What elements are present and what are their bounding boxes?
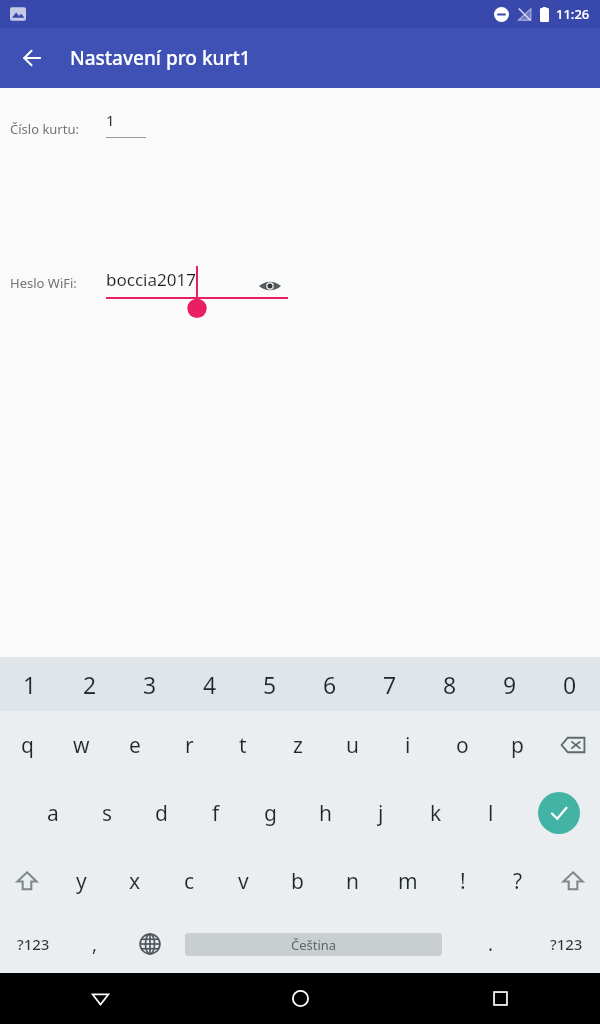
staticText: , bbox=[92, 931, 98, 957]
button[interactable]: Back bbox=[8, 34, 56, 82]
staticText: l bbox=[488, 799, 494, 828]
button[interactable]: s bbox=[80, 779, 134, 847]
button[interactable]: c bbox=[162, 847, 216, 915]
staticText: 0 bbox=[563, 669, 577, 700]
button[interactable]: t bbox=[216, 711, 270, 779]
button[interactable]: ?123 bbox=[532, 915, 600, 973]
staticText: m bbox=[398, 867, 418, 896]
button[interactable]: 3 bbox=[120, 657, 180, 711]
staticText: f bbox=[212, 799, 220, 828]
button[interactable]: Enter bbox=[518, 779, 600, 847]
button[interactable]: g bbox=[243, 779, 298, 847]
button[interactable]: , bbox=[67, 915, 122, 973]
button[interactable]: y bbox=[54, 847, 108, 915]
staticText: j bbox=[378, 799, 384, 828]
staticText: ?123 bbox=[17, 934, 50, 954]
button[interactable]: x bbox=[108, 847, 162, 915]
button[interactable]: z bbox=[270, 711, 325, 779]
button[interactable]: Shift bbox=[0, 847, 54, 915]
staticText: g bbox=[264, 799, 277, 828]
button[interactable]: k bbox=[408, 779, 463, 847]
button[interactable]: Shift bbox=[545, 847, 600, 915]
button[interactable]: Čeština bbox=[177, 915, 450, 973]
staticText: x bbox=[129, 867, 141, 896]
staticText: 2 bbox=[83, 669, 97, 700]
button[interactable]: v bbox=[216, 847, 270, 915]
button[interactable]: f bbox=[188, 779, 243, 847]
staticText: n bbox=[346, 867, 359, 896]
staticText: 1 bbox=[106, 110, 115, 130]
button[interactable]: r bbox=[162, 711, 216, 779]
button[interactable]: ? bbox=[490, 847, 545, 915]
staticText: 7 bbox=[383, 669, 397, 700]
button[interactable]: a bbox=[26, 779, 80, 847]
staticText: 5 bbox=[263, 669, 277, 700]
button[interactable]: q bbox=[0, 711, 54, 779]
button[interactable]: 0 bbox=[540, 657, 600, 711]
staticText: boccia2017 bbox=[106, 268, 196, 291]
staticText: s bbox=[102, 799, 113, 828]
button[interactable]: Home bbox=[200, 973, 400, 1024]
button[interactable]: Change language bbox=[122, 915, 177, 973]
button[interactable]: m bbox=[380, 847, 435, 915]
button[interactable]: 2 bbox=[60, 657, 120, 711]
button[interactable]: w bbox=[54, 711, 108, 779]
staticText: a bbox=[47, 799, 59, 828]
button[interactable]: 1 bbox=[0, 657, 60, 711]
button[interactable]: 9 bbox=[480, 657, 540, 711]
staticText: q bbox=[21, 731, 34, 760]
button[interactable]: Show password bbox=[252, 268, 288, 304]
staticText: ! bbox=[460, 867, 466, 896]
button[interactable]: Back bbox=[0, 973, 200, 1024]
button[interactable]: u bbox=[325, 711, 380, 779]
button[interactable]: b bbox=[270, 847, 325, 915]
button[interactable]: 4 bbox=[180, 657, 240, 711]
button[interactable]: 1 bbox=[106, 110, 146, 138]
button[interactable]: 7 bbox=[360, 657, 420, 711]
button[interactable]: 6 bbox=[300, 657, 360, 711]
staticText: e bbox=[129, 731, 141, 760]
staticText: u bbox=[346, 731, 359, 760]
button[interactable]: 8 bbox=[420, 657, 480, 711]
staticText: h bbox=[319, 799, 332, 828]
button[interactable]: 5 bbox=[240, 657, 300, 711]
staticText: ?123 bbox=[550, 934, 583, 954]
button[interactable]: ?123 bbox=[0, 915, 67, 973]
staticText: r bbox=[185, 731, 194, 760]
button[interactable]: n bbox=[325, 847, 380, 915]
staticText: p bbox=[511, 731, 524, 760]
staticText: w bbox=[73, 731, 90, 760]
button[interactable]: i bbox=[380, 711, 435, 779]
staticText: ? bbox=[513, 867, 523, 896]
staticText: y bbox=[76, 867, 87, 896]
button[interactable]: h bbox=[298, 779, 353, 847]
staticText: k bbox=[430, 799, 442, 828]
button[interactable]: Backspace bbox=[545, 711, 600, 779]
button[interactable]: d bbox=[134, 779, 188, 847]
staticText: 3 bbox=[143, 669, 157, 700]
staticText: 4 bbox=[203, 669, 217, 700]
button[interactable]: ! bbox=[435, 847, 490, 915]
staticText: Čeština bbox=[291, 936, 337, 954]
button[interactable]: . bbox=[450, 915, 532, 973]
staticText: 11:26 bbox=[556, 5, 590, 23]
button[interactable]: p bbox=[490, 711, 545, 779]
staticText: z bbox=[293, 731, 303, 760]
staticText: i bbox=[405, 731, 411, 760]
staticText: 6 bbox=[323, 669, 337, 700]
staticText: Heslo WiFi: bbox=[10, 274, 77, 292]
staticText: d bbox=[155, 799, 168, 828]
button[interactable]: l bbox=[463, 779, 518, 847]
button[interactable]: o bbox=[435, 711, 490, 779]
staticText: t bbox=[239, 731, 247, 760]
button[interactable]: e bbox=[108, 711, 162, 779]
staticText: Číslo kurtu: bbox=[10, 120, 79, 138]
staticText: b bbox=[291, 867, 304, 896]
button[interactable]: boccia2017 bbox=[106, 266, 288, 299]
button[interactable]: j bbox=[353, 779, 408, 847]
button[interactable]: Recent apps bbox=[400, 973, 600, 1024]
staticText: o bbox=[456, 731, 469, 760]
staticText: 1 bbox=[23, 669, 37, 700]
staticText: 9 bbox=[503, 669, 517, 700]
staticText: v bbox=[238, 867, 249, 896]
